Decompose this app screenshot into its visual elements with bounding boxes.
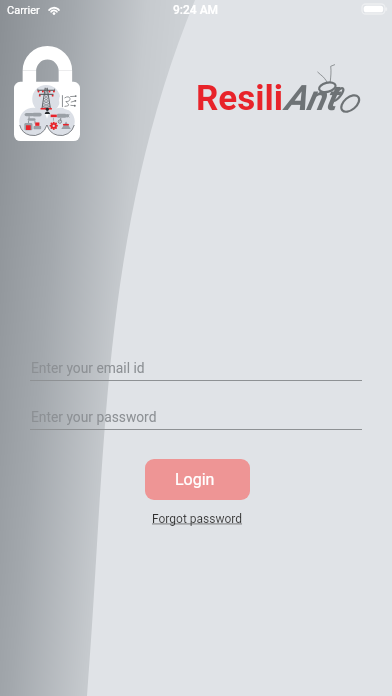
staticText: Enter your password [31,409,157,425]
staticText: Resili [196,78,284,119]
staticText: Carrier [7,4,40,17]
staticText: 9:24 AM [173,3,219,17]
other: Wi-Fi [48,5,60,14]
staticText: Ant [284,78,337,119]
button[interactable]: Forgot password [152,512,243,526]
other: ResiliAnt logo [14,46,80,141]
button[interactable]: Login [145,459,250,500]
staticText: Login [175,470,215,489]
staticText: Forgot password [152,512,243,526]
staticText: Enter your email id [31,360,145,376]
